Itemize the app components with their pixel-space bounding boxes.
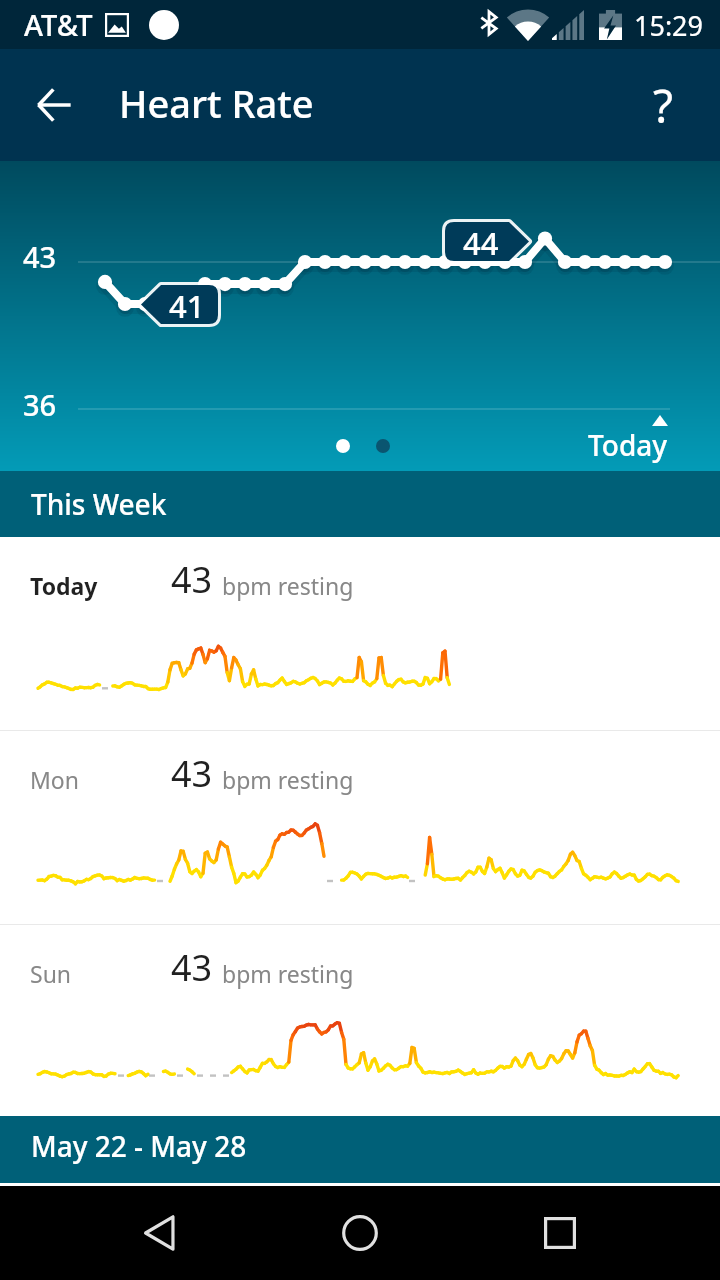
button[interactable]: May 22 - May 28 bbox=[0, 1116, 720, 1183]
button[interactable]: Today bbox=[0, 537, 720, 730]
staticText: 43 bbox=[171, 555, 213, 604]
staticText: 43 bbox=[171, 943, 213, 992]
button[interactable]: Mon bbox=[0, 731, 720, 924]
staticText: Today bbox=[30, 570, 98, 601]
button[interactable]: Today bbox=[582, 424, 674, 466]
staticText: May 22 - May 28 bbox=[31, 1127, 247, 1165]
button[interactable]: This Week bbox=[0, 471, 720, 537]
staticText: 15:29 bbox=[634, 7, 704, 44]
staticText: bpm resting bbox=[222, 570, 354, 601]
staticText: 44 bbox=[463, 222, 499, 261]
staticText: bpm resting bbox=[222, 958, 354, 989]
staticText: This Week bbox=[31, 485, 167, 523]
staticText: Mon bbox=[30, 764, 79, 795]
button[interactable]: Back bbox=[20, 71, 88, 139]
button[interactable]: Help bbox=[629, 71, 697, 139]
staticText: ? bbox=[653, 74, 673, 137]
button[interactable]: Back bbox=[120, 1193, 200, 1273]
button[interactable]: Recents bbox=[520, 1193, 600, 1273]
staticText: 36 bbox=[23, 385, 57, 424]
staticText: 43 bbox=[171, 749, 213, 798]
staticText: Sun bbox=[30, 958, 72, 989]
staticText: bpm resting bbox=[222, 764, 354, 795]
staticText: 41 bbox=[169, 285, 205, 324]
button[interactable]: Sun bbox=[0, 925, 720, 1116]
staticText: Today bbox=[588, 426, 668, 464]
staticText: 43 bbox=[23, 237, 57, 276]
button[interactable]: Home bbox=[320, 1193, 400, 1273]
staticText: AT&T bbox=[24, 5, 93, 44]
staticText: Heart Rate bbox=[119, 77, 314, 129]
